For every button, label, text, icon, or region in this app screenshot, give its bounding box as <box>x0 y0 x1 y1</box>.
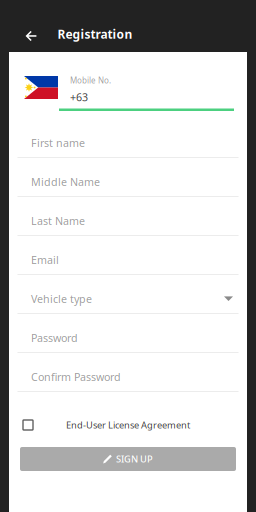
button[interactable]: Password <box>9 314 247 353</box>
staticText: Email <box>31 253 59 267</box>
staticText: End-User License Agreement <box>66 419 190 431</box>
staticText: Confirm Password <box>31 370 121 384</box>
button[interactable]: Registration <box>57 21 132 47</box>
button[interactable]: End-User License Agreement <box>9 392 247 435</box>
staticText: Registration <box>57 26 132 42</box>
staticText: Mobile No. <box>70 75 111 86</box>
button[interactable]: Email <box>9 236 247 275</box>
button[interactable]: Vehicle type <box>9 275 247 314</box>
staticText: Password <box>31 331 78 345</box>
staticText: First name <box>31 136 85 150</box>
button[interactable]: Last Name <box>9 197 247 236</box>
button[interactable]: SIGN UP <box>20 447 236 471</box>
staticText: Vehicle type <box>31 292 92 306</box>
staticText: SIGN UP <box>116 453 153 465</box>
button[interactable]: Back <box>0 23 57 45</box>
staticText: Middle Name <box>31 175 100 189</box>
staticText: Last Name <box>31 214 85 228</box>
button[interactable]: First name <box>9 119 247 158</box>
button[interactable]: Middle Name <box>9 158 247 197</box>
button[interactable]: Confirm Password <box>9 353 247 392</box>
staticText: +63 <box>70 90 88 104</box>
